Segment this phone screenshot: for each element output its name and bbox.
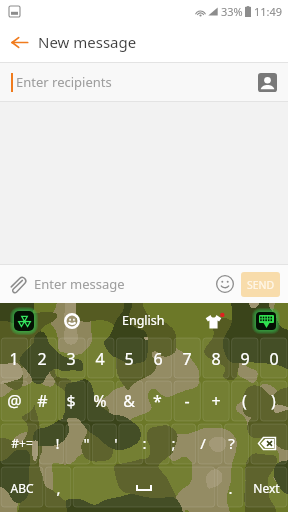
staticText: 7 [182, 348, 192, 370]
button[interactable]: , [44, 464, 72, 512]
staticText: ABC [10, 480, 34, 496]
staticText: 4 [95, 348, 105, 370]
button[interactable]: 0 [259, 338, 288, 380]
button[interactable]: ) [259, 380, 288, 422]
button[interactable]: Attach [0, 265, 34, 303]
staticText: # [37, 390, 48, 412]
button[interactable]: 3 [56, 338, 85, 380]
staticText: 8 [211, 348, 221, 370]
button[interactable]: 6 [143, 338, 172, 380]
button[interactable]: ? [217, 422, 246, 464]
button[interactable]: % [85, 380, 114, 422]
button[interactable]: Hide keyboard [252, 307, 280, 335]
button[interactable]: & [114, 380, 143, 422]
staticText: 6 [153, 348, 163, 370]
staticText: English [122, 312, 165, 329]
button[interactable]: $ [56, 380, 85, 422]
staticText: $ [66, 390, 76, 412]
staticText: ' [114, 433, 118, 453]
staticText: Enter recipients [16, 73, 112, 91]
staticText: * [153, 390, 162, 412]
button[interactable]: " [72, 422, 101, 464]
button[interactable]: Space [72, 464, 216, 512]
button[interactable]: Next [244, 464, 288, 512]
button[interactable]: / [188, 422, 217, 464]
button[interactable]: Themes [202, 310, 224, 332]
button[interactable]: 2 [28, 338, 56, 380]
button[interactable]: Backspace [246, 422, 288, 464]
button[interactable]: 8 [201, 338, 230, 380]
button[interactable]: Back [0, 22, 38, 62]
staticText: New message [38, 32, 137, 52]
staticText: 11:49 [254, 4, 283, 19]
button[interactable]: # [28, 380, 56, 422]
staticText: , [56, 478, 61, 498]
button[interactable]: 4 [85, 338, 114, 380]
button[interactable]: @ [0, 380, 28, 422]
staticText: @ [7, 390, 22, 412]
staticText: 3 [66, 348, 76, 370]
button[interactable]: ' [101, 422, 130, 464]
button[interactable]: . [216, 464, 244, 512]
button[interactable]: 1 [0, 338, 28, 380]
button[interactable]: Emoji [209, 265, 241, 303]
staticText: / [200, 433, 206, 453]
staticText: % [93, 390, 107, 412]
button[interactable]: * [143, 380, 172, 422]
staticText: 5 [124, 348, 134, 370]
button[interactable]: ; [159, 422, 188, 464]
staticText: - [184, 390, 190, 412]
staticText: . [228, 478, 233, 498]
staticText: ? [228, 433, 235, 453]
staticText: : [142, 433, 147, 453]
staticText: ( [242, 390, 247, 412]
button[interactable]: ( [230, 380, 259, 422]
staticText: + [211, 390, 221, 412]
button[interactable]: Contacts [248, 63, 286, 101]
staticText: " [83, 433, 90, 453]
button[interactable]: #+= [0, 422, 43, 464]
staticText: 0 [269, 348, 279, 370]
staticText: 33% [221, 4, 243, 19]
button[interactable]: Keyboard settings [10, 307, 38, 335]
staticText: Enter message [34, 275, 125, 293]
button[interactable]: SEND [241, 272, 280, 297]
button[interactable]: 5 [114, 338, 143, 380]
button[interactable]: Emoji [61, 310, 83, 332]
staticText: ; [171, 433, 176, 453]
staticText: 1 [9, 348, 19, 370]
button[interactable]: 9 [230, 338, 259, 380]
staticText: ! [55, 433, 60, 453]
staticText: ) [271, 390, 276, 412]
button[interactable]: 7 [172, 338, 201, 380]
staticText: Next [253, 480, 280, 496]
button[interactable]: - [172, 380, 201, 422]
button[interactable]: ABC [0, 464, 44, 512]
staticText: 2 [37, 348, 47, 370]
staticText: 9 [240, 348, 250, 370]
staticText: & [123, 390, 135, 412]
button[interactable]: ! [43, 422, 72, 464]
staticText: SEND [247, 278, 275, 292]
button[interactable]: : [130, 422, 159, 464]
staticText: #+= [11, 435, 33, 451]
button[interactable]: + [201, 380, 230, 422]
